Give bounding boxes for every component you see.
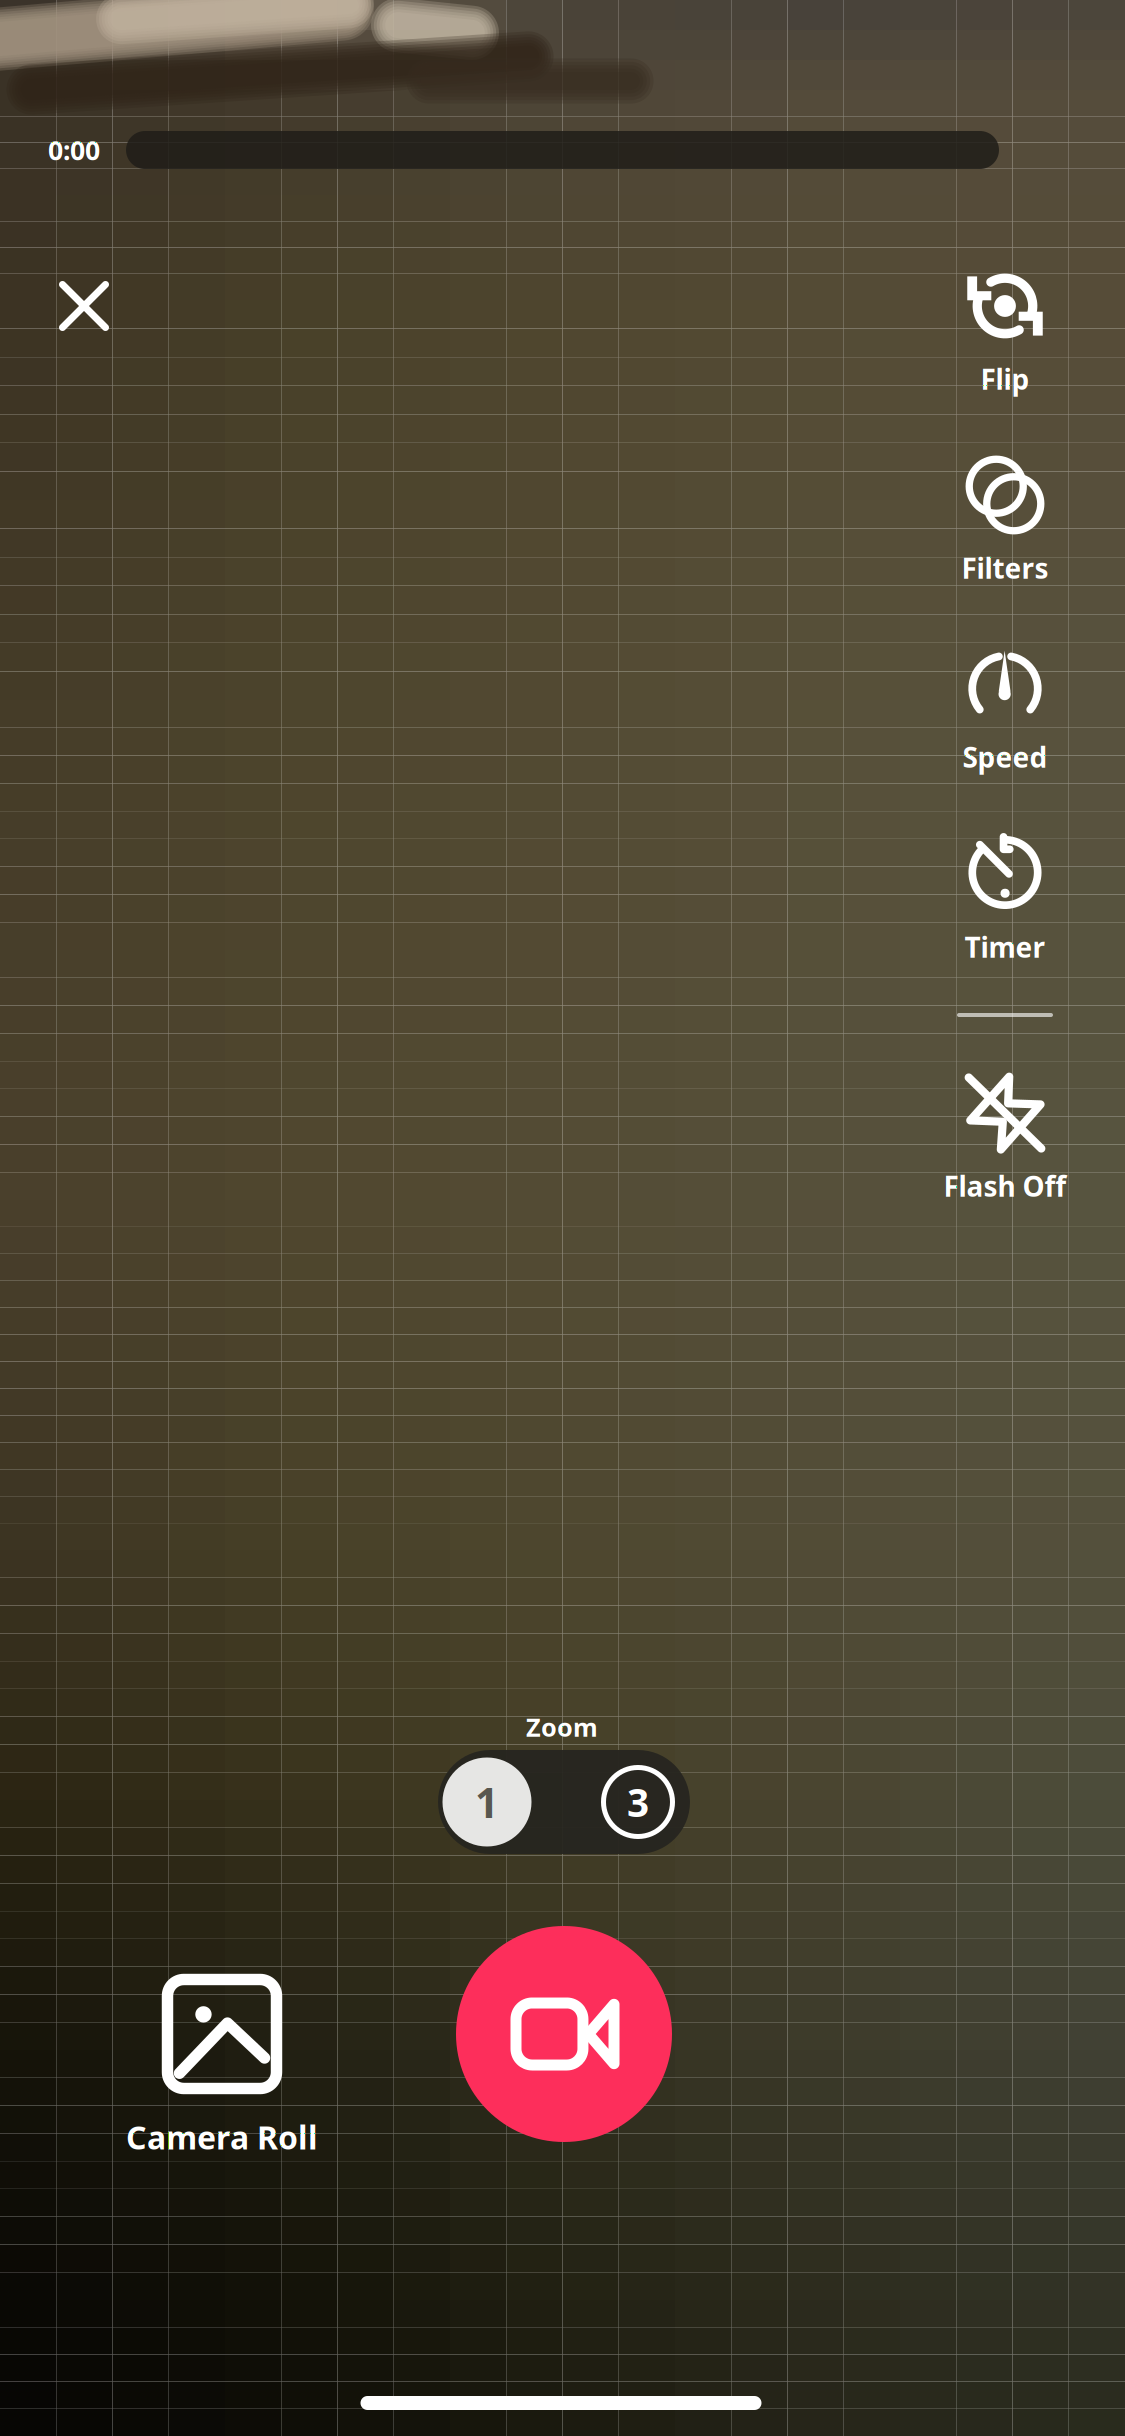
button[interactable]: Start recording	[456, 1926, 672, 2142]
button[interactable]: Flash Off	[910, 1074, 1100, 1224]
staticText: Filters	[961, 549, 1048, 587]
staticText: Flash Off	[943, 1167, 1066, 1205]
staticText: Camera Roll	[126, 2116, 318, 2158]
button[interactable]: Close	[34, 256, 134, 356]
button[interactable]: Filters	[910, 456, 1100, 606]
button[interactable]: Camera Roll	[72, 1985, 372, 2185]
staticText: Zoom	[526, 1710, 598, 1744]
staticText: Speed	[962, 738, 1047, 776]
staticText: 0:00	[48, 132, 100, 168]
staticText: Timer	[964, 928, 1045, 966]
button[interactable]: 3× zoom	[592, 1750, 684, 1854]
button[interactable]: Flip	[910, 267, 1100, 417]
button[interactable]: Timer	[910, 835, 1100, 985]
staticText: Flip	[980, 360, 1029, 398]
button[interactable]: Speed	[910, 645, 1100, 795]
staticText: 1	[475, 1775, 499, 1829]
staticText: 3	[627, 1776, 649, 1828]
button[interactable]: 1× zoom	[435, 1750, 539, 1854]
